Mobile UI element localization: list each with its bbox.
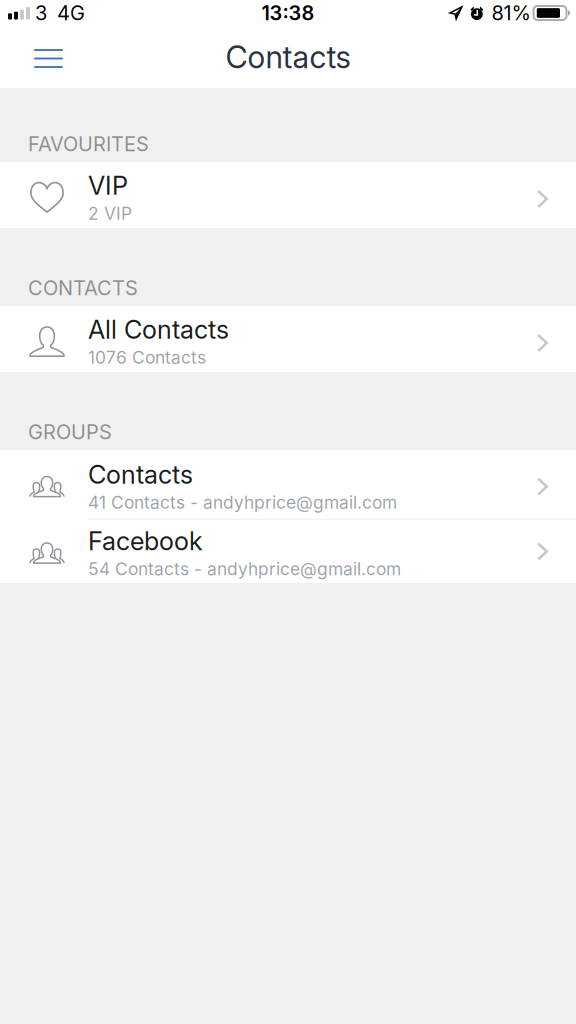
staticText: CONTACTS bbox=[28, 276, 138, 300]
button[interactable]: Contacts bbox=[0, 450, 576, 520]
staticText: 3 bbox=[35, 1, 47, 25]
button[interactable]: All Contacts bbox=[0, 306, 576, 372]
staticText: Facebook bbox=[88, 526, 203, 556]
staticText: 1076 Contacts bbox=[88, 347, 206, 368]
staticText: All Contacts bbox=[88, 314, 229, 345]
staticText: Contacts bbox=[88, 459, 193, 490]
staticText: 2 VIP bbox=[88, 203, 132, 224]
staticText: 13:38 bbox=[261, 1, 314, 25]
staticText: GROUPS bbox=[28, 420, 112, 444]
button[interactable]: Menu bbox=[0, 26, 97, 88]
staticText: VIP bbox=[88, 170, 128, 201]
button[interactable]: VIP bbox=[0, 162, 576, 228]
button[interactable]: Facebook bbox=[0, 520, 576, 583]
staticText: 54 Contacts - andyhprice@gmail.com bbox=[88, 558, 401, 579]
staticText: Contacts bbox=[225, 38, 350, 75]
staticText: 4G bbox=[57, 1, 85, 25]
staticText: 41 Contacts - andyhprice@gmail.com bbox=[88, 492, 397, 513]
staticText: 81% bbox=[491, 1, 530, 25]
staticText: FAVOURITES bbox=[28, 132, 149, 156]
